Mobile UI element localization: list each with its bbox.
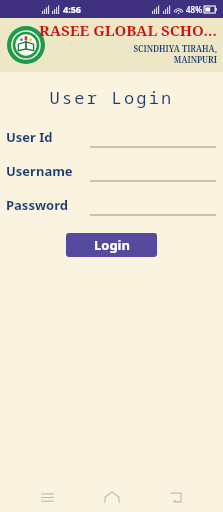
button[interactable]: Password (0, 194, 223, 216)
button[interactable]: User Id (0, 126, 223, 148)
staticText: RASEE GLOBAL SCHO... (39, 20, 217, 40)
staticText: User Id (6, 128, 90, 146)
button[interactable]: Home (94, 482, 130, 512)
staticText: MAINPURI (173, 54, 217, 65)
button[interactable]: Back (158, 482, 194, 512)
button[interactable]: Recent apps (29, 482, 65, 512)
staticText: Password (6, 196, 90, 214)
button[interactable]: Login (66, 233, 157, 257)
staticText: Username (6, 162, 90, 180)
staticText: 4:56 (63, 3, 81, 15)
button[interactable]: Username (0, 160, 223, 182)
staticText: 48% (186, 4, 202, 15)
staticText: Login (94, 236, 130, 254)
staticText: SCINDHIYA TIRAHA, (133, 43, 217, 54)
staticText: User Login (0, 86, 223, 109)
